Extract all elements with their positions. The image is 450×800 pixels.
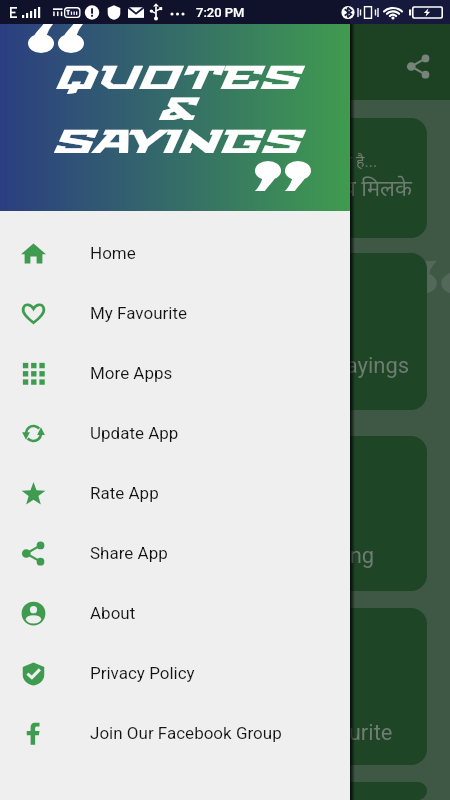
staticText: About bbox=[90, 603, 136, 623]
staticText: Share App bbox=[90, 543, 168, 563]
staticText: Privacy Policy bbox=[90, 663, 195, 683]
staticText: SAYINGS bbox=[51, 119, 299, 168]
button[interactable]: My Favourite bbox=[23, 608, 427, 765]
button[interactable]: Share App bbox=[0, 523, 350, 583]
button[interactable] bbox=[23, 782, 427, 800]
staticText: Home bbox=[90, 243, 136, 263]
button[interactable]: दोस्त है... bbox=[23, 118, 427, 238]
button[interactable]: About bbox=[0, 583, 350, 643]
button[interactable]: Privacy Policy bbox=[0, 643, 350, 703]
staticText: My Favourite bbox=[90, 303, 187, 323]
button[interactable]: Share bbox=[394, 42, 442, 90]
staticText: Quotes & Sayings bbox=[238, 353, 410, 379]
staticText: My Favourite bbox=[267, 720, 393, 746]
staticText: Join Our Facebook Group bbox=[90, 723, 282, 743]
staticText: Update App bbox=[90, 423, 179, 443]
staticText: QUOTES bbox=[53, 55, 298, 104]
button[interactable]: Quotes & Sayings bbox=[23, 253, 427, 410]
button[interactable]: Rate App bbox=[0, 463, 350, 523]
staticText: Good Morning bbox=[235, 543, 375, 569]
button[interactable]: Join Our Facebook Group bbox=[0, 703, 350, 763]
staticText: & bbox=[157, 87, 194, 134]
staticText: दोस्त है... bbox=[324, 150, 378, 172]
button[interactable]: More Apps bbox=[0, 343, 350, 403]
button[interactable]: Good Morning bbox=[23, 436, 427, 591]
button[interactable]: My Favourite bbox=[0, 283, 350, 343]
staticText: More Apps bbox=[90, 363, 173, 383]
button[interactable]: Home bbox=[0, 223, 350, 283]
staticText: Rate App bbox=[90, 483, 159, 503]
staticText: 7:20 PM bbox=[196, 5, 245, 20]
button[interactable]: Update App bbox=[0, 403, 350, 463]
staticText: हम सब मिलके bbox=[298, 172, 412, 202]
